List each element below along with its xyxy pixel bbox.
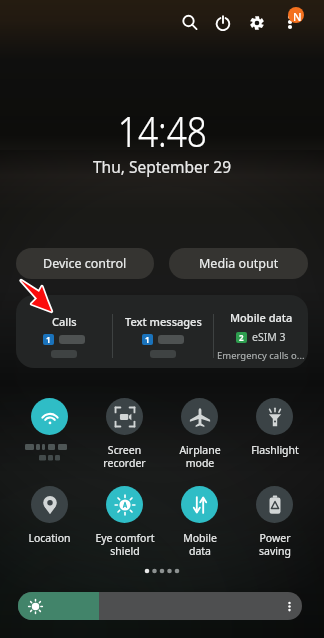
staticText: Mobile data [230,310,293,325]
staticText: Media output [199,255,279,272]
staticText: 2 [239,332,244,343]
staticText: Power saving [259,531,291,558]
staticText: N [293,9,302,24]
button[interactable]: Mobile data [214,303,308,368]
staticText: Screen recorder [103,443,146,470]
button[interactable]: Eye comfort shield [87,486,162,558]
button[interactable]: Brightness [18,592,302,620]
staticText: 1 [145,334,150,345]
button[interactable]: Power saving [237,486,312,558]
button[interactable]: More options [274,1,308,35]
button[interactable]: Calls [16,303,112,368]
button[interactable]: Media output [169,248,308,279]
button[interactable]: Flashlight [237,398,312,457]
staticText: Calls [52,314,77,329]
staticText: Emergency calls o... [217,349,305,362]
button[interactable]: Screen recorder [87,398,162,470]
staticText: 14:48 [118,101,207,160]
staticText: Eye comfort shield [95,531,155,558]
button[interactable]: Text messages [113,303,213,368]
button[interactable]: Settings [242,8,272,38]
staticText: Thu, September 29 [93,156,232,177]
staticText: Mobile data [183,531,217,558]
staticText: Flashlight [251,443,299,457]
button[interactable]: Wi-Fi [12,398,87,469]
staticText: Device control [43,255,127,272]
staticText: Text messages [125,314,202,329]
button[interactable]: Power [208,8,238,38]
staticText: 1 [46,334,51,345]
button[interactable]: Location [12,486,87,545]
staticText: Location [28,531,71,545]
button[interactable]: Search [174,7,204,37]
button[interactable]: Mobile data [162,486,237,558]
button[interactable]: Device control [16,248,154,279]
staticText: Airplane mode [179,443,221,470]
button[interactable]: Airplane mode [162,398,237,470]
staticText: eSIM 3 [252,330,286,344]
